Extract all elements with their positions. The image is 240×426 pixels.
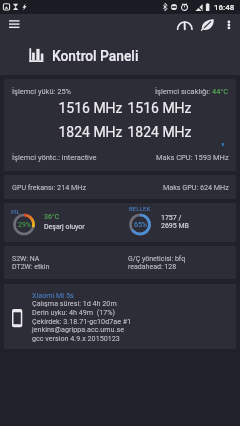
staticText: İşlemci sıcaklığı: [155,87,212,96]
button[interactable]: Performance profile [173,14,197,38]
staticText: 1824 MHz [56,124,125,140]
staticText: 1824 MHz [125,124,194,140]
staticText: Çalışma süresi: 1d 4h 20m [32,299,117,307]
staticText: Kontrol Paneli [52,48,139,64]
button[interactable]: İşlemci yükü: 25% [4,79,236,171]
staticText: jenkins@agrippa.acc.umu.se [32,325,125,333]
button[interactable]: Xiaomi Mi 5s [4,284,236,349]
staticText: 1516 MHz [125,100,194,116]
staticText: PİL [11,208,20,215]
staticText: Maks CPU: 1593 MHz [156,153,229,162]
staticText: BELLEK [129,205,151,212]
staticText: readahead: 128 [128,263,177,271]
staticText: Derin uyku: 4h 49m (17%) [32,308,115,316]
button[interactable]: PİL [4,203,236,242]
button[interactable]: S2W: NA [4,246,236,279]
staticText: Xiaomi Mi 5s [32,291,74,299]
staticText: İşlemci yükü: 25% [12,87,72,96]
button[interactable]: Navigation menu [3,14,27,38]
staticText: G/Ç yöneticisi: bfq [128,255,186,263]
staticText: İşlemci yöntc.: interactive [12,153,97,162]
staticText: 2695 MB [161,222,189,230]
staticText: S2W: NA [12,255,40,263]
staticText: DT2W: etkin [12,263,50,271]
staticText: 16:48 [214,3,235,12]
staticText: 1516 MHz [56,100,125,116]
staticText: 65% [134,221,147,229]
staticText: Maks GPU: 624 MHz [163,183,229,191]
staticText: 44°C [212,87,229,96]
staticText: Çekirdek: 3.18.71-gc10d7ae #1 [32,317,132,325]
button[interactable]: GPU frekansı: 214 MHz [4,175,236,199]
staticText: gcc version 4.9.x 20150123 [32,334,120,342]
staticText: 29% [18,221,31,229]
staticText: Deşarj oluyor [44,223,85,231]
button[interactable]: Battery saver [197,14,219,38]
button[interactable]: More options [217,14,240,38]
staticText: 1757 / [161,214,182,222]
staticText: 36°C [44,213,60,221]
staticText: GPU frekansı: 214 MHz [12,183,86,191]
